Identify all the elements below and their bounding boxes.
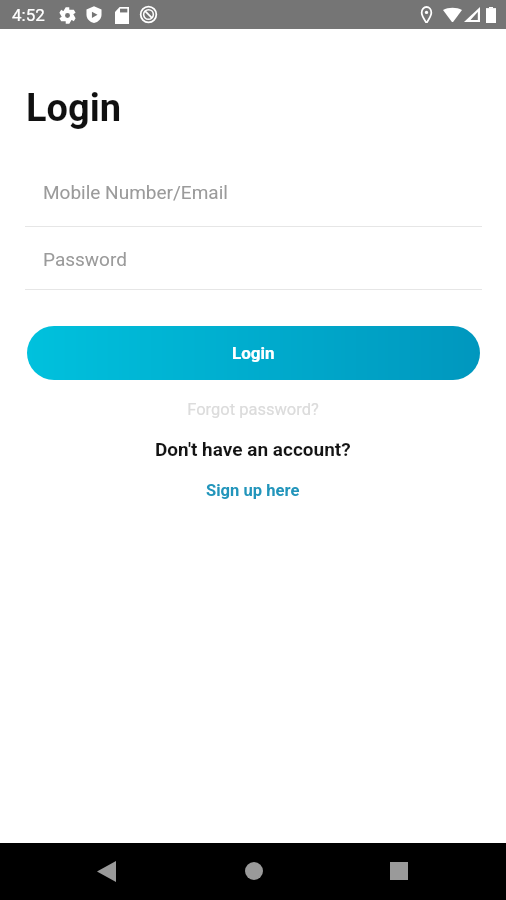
button[interactable]: Password [0, 233, 506, 289]
button[interactable]: Forgot password? [0, 400, 506, 419]
staticText: 4:52 [12, 5, 45, 25]
button[interactable]: Mobile Number/Email [0, 166, 506, 226]
staticText: Password [43, 248, 127, 270]
button[interactable]: Back [82, 847, 130, 895]
button[interactable]: Recents [375, 847, 423, 895]
staticText: Don't have an account? [155, 438, 351, 460]
button[interactable]: Sign up here [206, 481, 300, 500]
staticText: Forgot password? [187, 400, 319, 419]
button[interactable]: Login [27, 326, 480, 380]
staticText: Login [232, 343, 275, 363]
button[interactable]: Home [230, 847, 278, 895]
staticText: Mobile Number/Email [43, 181, 228, 203]
staticText: Login [26, 86, 122, 131]
